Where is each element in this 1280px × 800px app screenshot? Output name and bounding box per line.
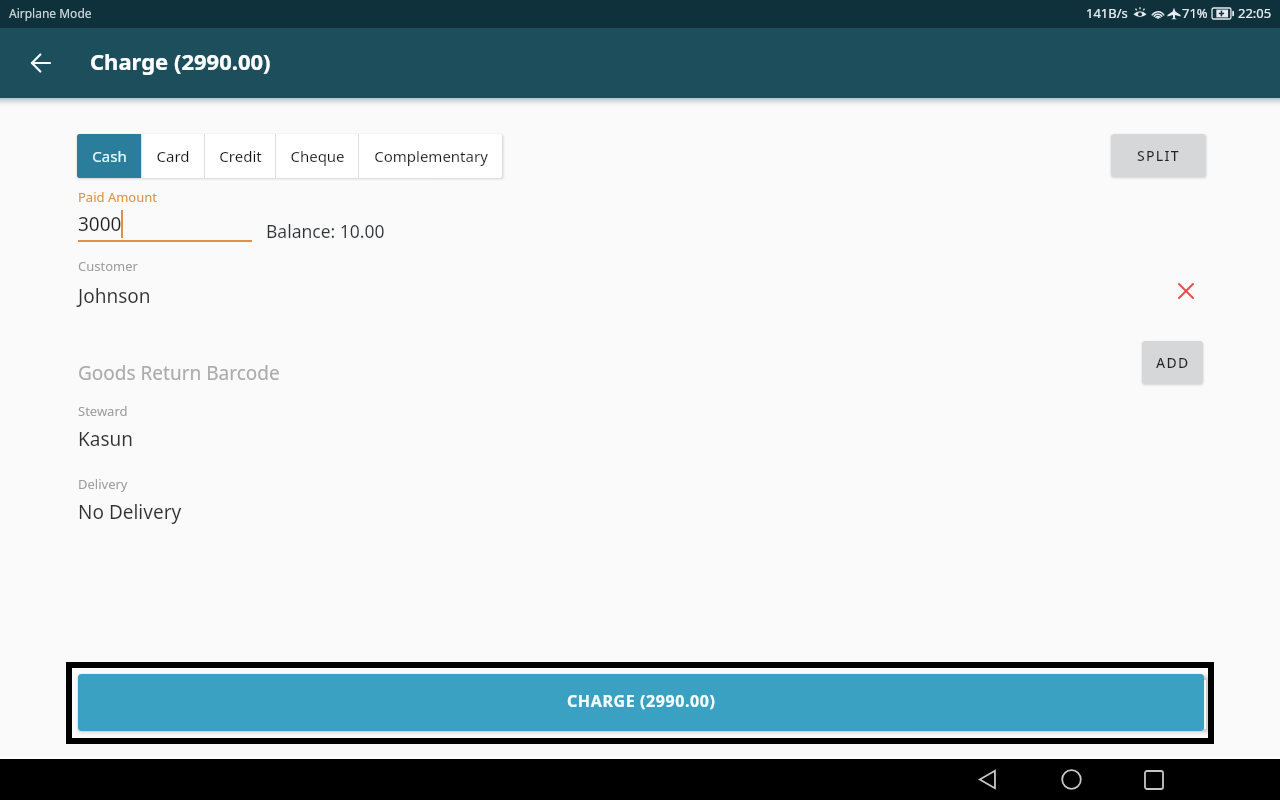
staticText: Kasun (78, 426, 134, 452)
staticText: Complementary (374, 146, 488, 166)
staticText: Balance: 10.00 (266, 219, 385, 243)
staticText: 22:05 (1238, 4, 1272, 22)
button[interactable]: Recents (1133, 759, 1175, 800)
staticText: Cash (92, 146, 127, 166)
button[interactable]: Complementary (359, 134, 502, 178)
staticText: Customer (78, 257, 138, 275)
button[interactable]: Home (1050, 759, 1092, 800)
staticText: 71% (1182, 4, 1208, 22)
staticText: 3000 (78, 211, 122, 237)
staticText: Steward (78, 402, 128, 420)
staticText: Airplane Mode (9, 5, 92, 21)
staticText: Charge (2990.00) (90, 46, 271, 76)
staticText: Delivery (78, 475, 128, 493)
staticText: Paid Amount (78, 188, 157, 206)
button[interactable]: Cheque (276, 134, 358, 178)
button[interactable]: Cash (77, 134, 141, 178)
staticText: 141B/s (1086, 4, 1128, 22)
staticText: CHARGE (2990.00) (567, 690, 716, 712)
button[interactable]: Back (17, 39, 65, 87)
button[interactable]: CHARGE (2990.00) (78, 674, 1204, 731)
staticText: No Delivery (78, 499, 182, 525)
button[interactable]: Card (142, 134, 204, 178)
staticText: SPLIT (1137, 146, 1181, 165)
button[interactable]: Credit (205, 134, 275, 178)
staticText: Card (156, 146, 190, 166)
staticText: Goods Return Barcode (78, 360, 280, 386)
staticText: ADD (1156, 353, 1190, 372)
button[interactable]: SPLIT (1111, 134, 1206, 177)
button[interactable]: Goods Return Barcode (78, 348, 1128, 382)
staticText: Johnson (78, 283, 151, 309)
staticText: Cheque (290, 146, 345, 166)
staticText: Credit (219, 146, 262, 166)
button[interactable]: Back (967, 759, 1009, 800)
button[interactable]: Clear customer (1168, 273, 1204, 309)
button[interactable]: ADD (1142, 341, 1203, 384)
button[interactable]: Customer (78, 255, 1158, 310)
